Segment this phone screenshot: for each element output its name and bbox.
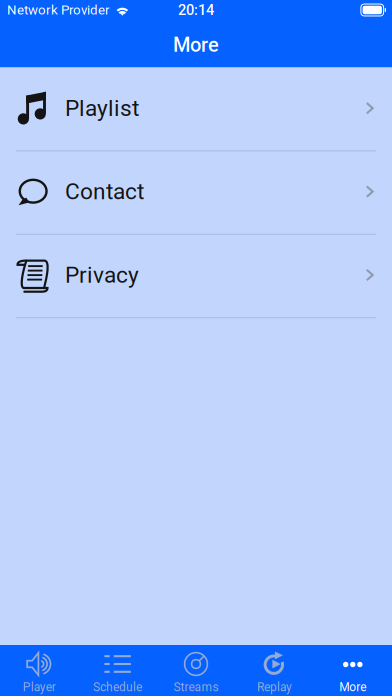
button[interactable]: Playlist — [0, 68, 392, 151]
staticText: More — [173, 33, 219, 57]
button[interactable]: Streams — [157, 645, 235, 696]
button[interactable]: Player — [0, 645, 78, 696]
staticText: Network Provider — [7, 2, 110, 18]
button[interactable]: Replay — [235, 645, 314, 696]
staticText: Player — [23, 680, 56, 694]
staticText: Playlist — [65, 95, 139, 121]
staticText: Replay — [257, 680, 292, 694]
button[interactable]: Privacy — [0, 235, 392, 318]
button[interactable]: More — [314, 645, 392, 696]
button[interactable]: Schedule — [78, 645, 157, 696]
staticText: 20:14 — [178, 1, 214, 19]
button[interactable]: Contact — [0, 151, 392, 235]
staticText: Privacy — [65, 262, 139, 288]
staticText: Schedule — [93, 680, 142, 694]
staticText: Streams — [173, 680, 218, 694]
staticText: Contact — [65, 178, 144, 205]
staticText: More — [339, 680, 366, 694]
